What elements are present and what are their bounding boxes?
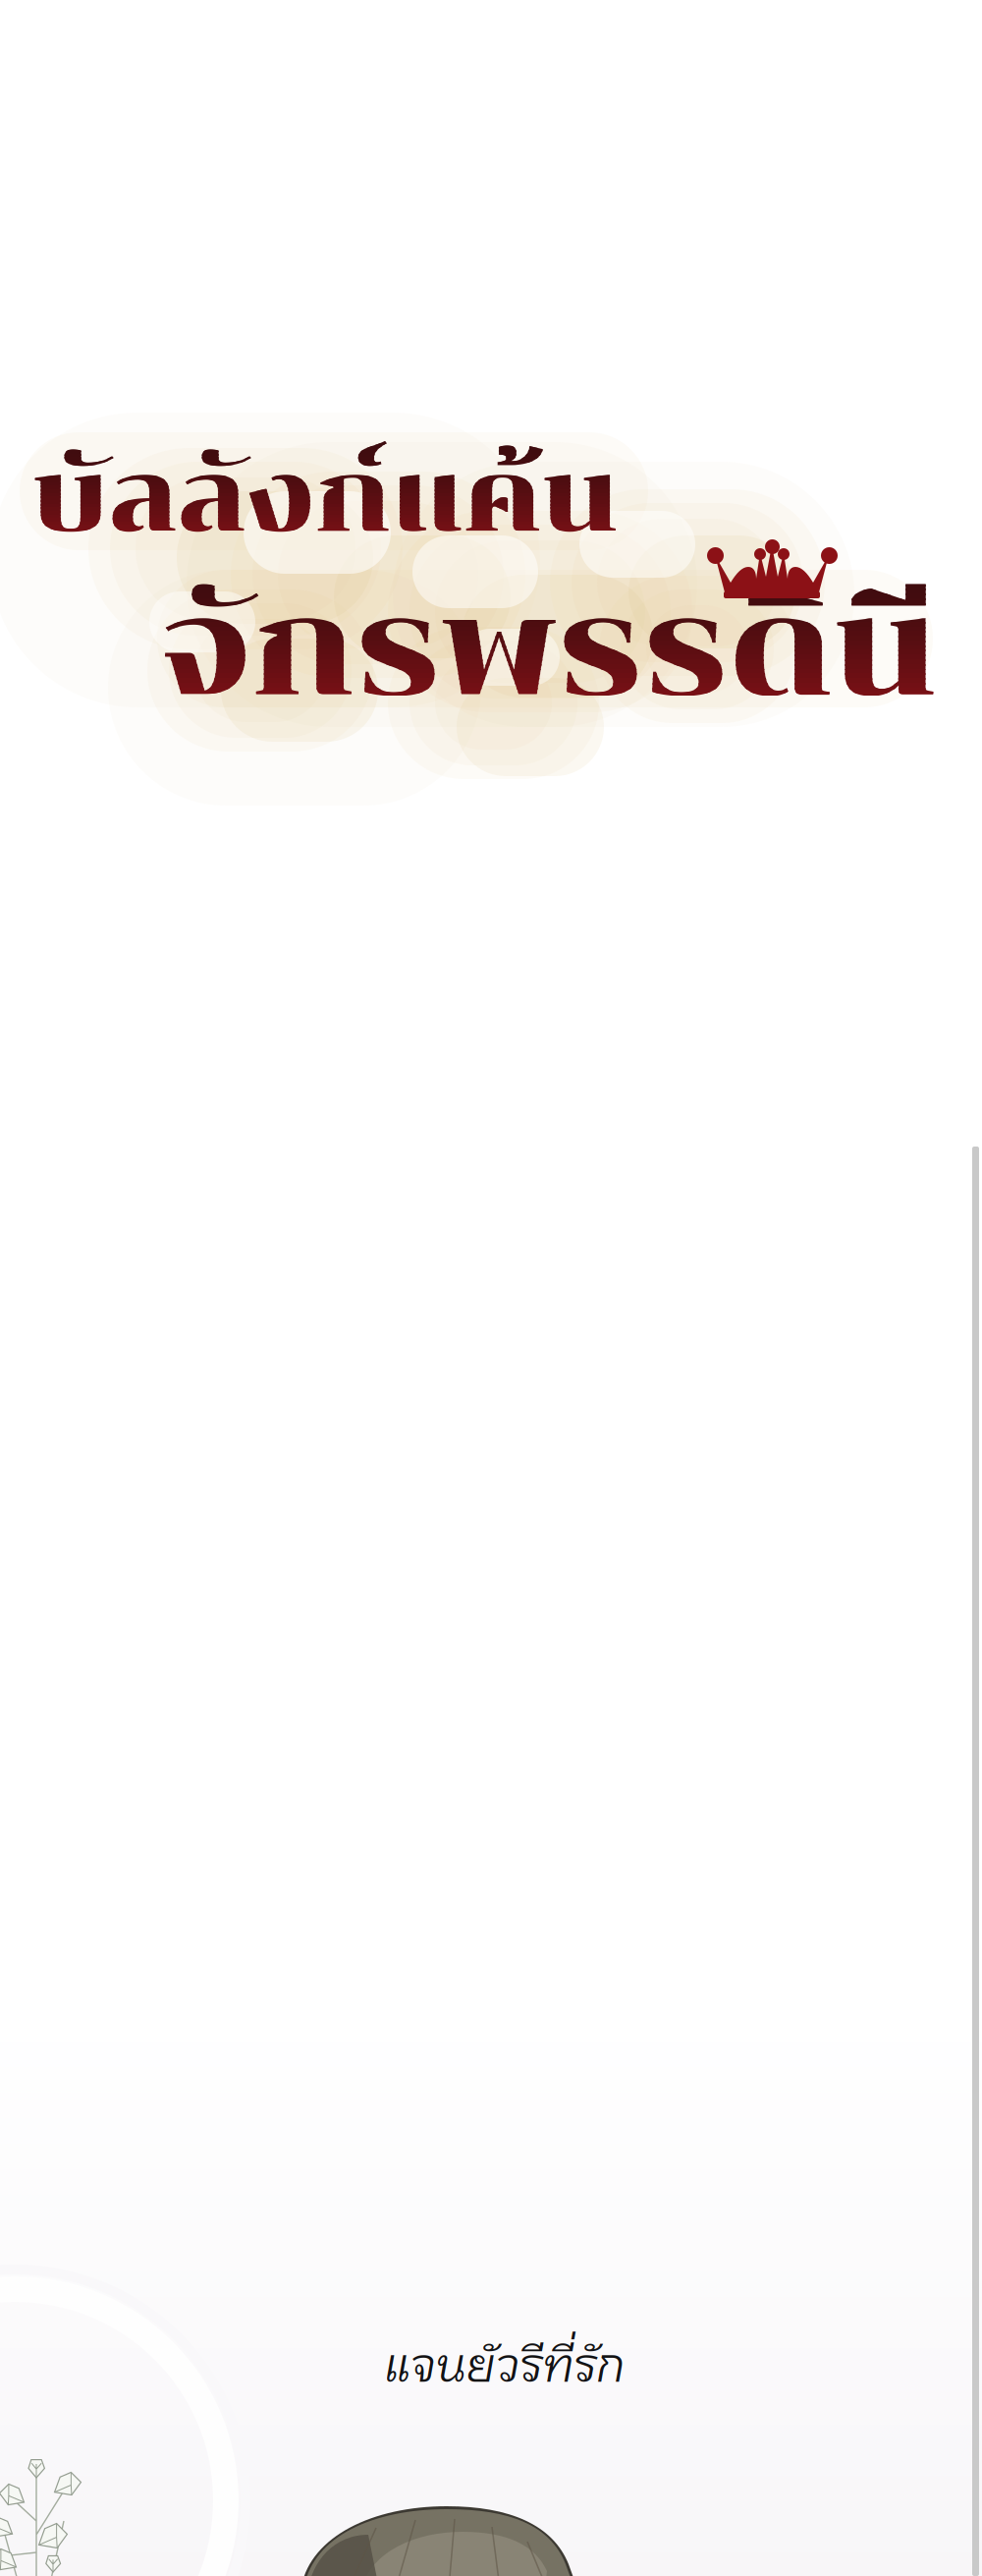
staticText: จักรพรรดินี [161, 566, 937, 728]
staticText: จักรพรรดินี [161, 566, 937, 728]
staticText: จักรพรรดินี [161, 566, 937, 728]
staticText: บัลลังก์แค้น [32, 436, 619, 556]
staticText: บัลลังก์แค้น [32, 436, 619, 556]
staticText: บัลลังก์แค้น [32, 436, 619, 556]
staticText: จักรพรรดินี [161, 566, 937, 728]
staticText: บัลลังก์แค้น [32, 436, 619, 556]
staticText: บัลลังก์แค้น [32, 436, 619, 556]
staticText: บัลลังก์แค้น [32, 436, 619, 556]
staticText: จักรพรรดินี [161, 566, 937, 728]
staticText: บัลลังก์แค้น [32, 436, 619, 556]
staticText: จักรพรรดินี [161, 566, 937, 728]
staticText: บัลลังก์แค้น [32, 436, 619, 556]
staticText: บัลลังก์แค้น [32, 436, 619, 556]
staticText: จักรพรรดินี [161, 566, 937, 728]
staticText: จักรพรรดินี [161, 566, 937, 728]
staticText: บัลลังก์แค้น [32, 436, 619, 556]
staticText: จักรพรรดินี [161, 566, 937, 728]
staticText: บัลลังก์แค้น [32, 436, 619, 556]
staticText: บัลลังก์แค้น [32, 436, 619, 556]
staticText: บัลลังก์แค้น [32, 436, 619, 556]
staticText: บัลลังก์แค้น [32, 436, 619, 556]
staticText: บัลลังก์แค้น [32, 436, 619, 556]
staticText: แจนยัวรีที่รัก [384, 2332, 625, 2394]
staticText: จักรพรรดินี [161, 566, 937, 728]
staticText: จักรพรรดินี [161, 566, 937, 728]
staticText: บัลลังก์แค้น [32, 436, 619, 556]
staticText: จักรพรรดินี [161, 566, 937, 728]
staticText: จักรพรรดินี [161, 566, 937, 728]
staticText: จักรพรรดินี [161, 566, 937, 728]
staticText: จักรพรรดินี [161, 566, 937, 728]
staticText: บัลลังก์แค้น [32, 436, 619, 556]
staticText: จักรพรรดินี [161, 566, 937, 728]
staticText: จักรพรรดินี [161, 566, 937, 728]
staticText: บัลลังก์แค้น [32, 436, 619, 556]
staticText: บัลลังก์แค้น [32, 436, 619, 556]
staticText: บัลลังก์แค้น [32, 436, 619, 556]
staticText: จักรพรรดินี [161, 566, 937, 728]
staticText: จักรพรรดินี [161, 566, 937, 728]
staticText: จักรพรรดินี [161, 566, 937, 728]
staticText: บัลลังก์แค้น [32, 436, 619, 556]
staticText: จักรพรรดินี [161, 566, 937, 728]
staticText: บัลลังก์แค้น [32, 436, 619, 556]
staticText: จักรพรรดินี [161, 566, 937, 728]
staticText: จักรพรรดินี [161, 566, 937, 728]
staticText: บัลลังก์แค้น [32, 436, 619, 556]
staticText: จักรพรรดินี [161, 566, 937, 728]
staticText: บัลลังก์แค้น [32, 436, 619, 556]
staticText: บัลลังก์แค้น [32, 436, 619, 556]
staticText: บัลลังก์แค้น [32, 436, 619, 556]
staticText: บัลลังก์แค้น [32, 436, 619, 556]
staticText: บัลลังก์แค้น [32, 436, 619, 556]
staticText: จักรพรรดินี [161, 566, 937, 728]
staticText: จักรพรรดินี [161, 566, 937, 728]
staticText: จักรพรรดินี [161, 566, 937, 728]
staticText: บัลลังก์แค้น [32, 436, 619, 556]
staticText: จักรพรรดินี [161, 566, 937, 728]
staticText: จักรพรรดินี [161, 566, 937, 728]
staticText: บัลลังก์แค้น [32, 436, 619, 556]
staticText: จักรพรรดินี [161, 566, 937, 728]
staticText: บัลลังก์แค้น [32, 436, 619, 556]
staticText: จักรพรรดินี [161, 566, 937, 728]
staticText: จักรพรรดินี [161, 566, 937, 728]
staticText: บัลลังก์แค้น [32, 436, 619, 556]
staticText: บัลลังก์แค้น [32, 436, 619, 556]
staticText: จักรพรรดินี [161, 566, 937, 728]
staticText: จักรพรรดินี [161, 566, 937, 728]
staticText: บัลลังก์แค้น [32, 436, 619, 556]
staticText: บัลลังก์แค้น [32, 436, 619, 556]
staticText: บัลลังก์แค้น [32, 436, 619, 556]
staticText: บัลลังก์แค้น [32, 436, 619, 556]
staticText: บัลลังก์แค้น [32, 436, 619, 556]
staticText: บัลลังก์แค้น [32, 436, 619, 556]
staticText: จักรพรรดินี [161, 566, 937, 728]
staticText: จักรพรรดินี [161, 566, 937, 728]
staticText: จักรพรรดินี [161, 566, 937, 728]
staticText: จักรพรรดินี [161, 566, 937, 728]
staticText: จักรพรรดินี [161, 566, 937, 728]
staticText: จักรพรรดินี [161, 566, 937, 728]
staticText: จักรพรรดินี [161, 566, 937, 728]
staticText: จักรพรรดินี [161, 566, 937, 728]
staticText: บัลลังก์แค้น [32, 436, 619, 556]
staticText: บัลลังก์แค้น [32, 436, 619, 556]
staticText: บัลลังก์แค้น [32, 436, 619, 556]
staticText: บัลลังก์แค้น [32, 436, 619, 556]
staticText: บัลลังก์แค้น [32, 436, 619, 556]
staticText: จักรพรรดินี [161, 566, 937, 728]
staticText: จักรพรรดินี [161, 566, 937, 728]
